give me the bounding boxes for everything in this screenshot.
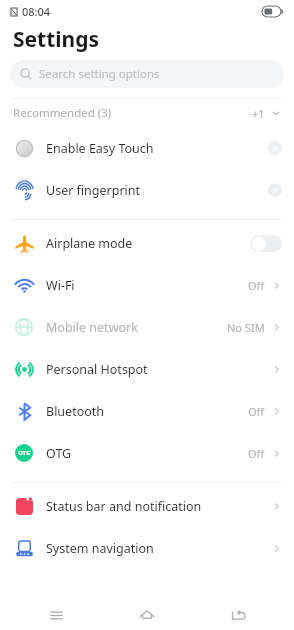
staticText: User fingerprint: [46, 182, 141, 199]
staticText: Airplane mode: [46, 235, 133, 252]
staticText: Status bar and notification: [46, 498, 202, 515]
staticText: Bluetooth: [46, 403, 105, 420]
staticText: Settings: [13, 25, 100, 54]
staticText: Enable Easy Touch: [46, 140, 154, 157]
staticText: Wi-Fi: [46, 277, 75, 294]
staticText: Off: [248, 278, 265, 293]
staticText: Off: [248, 446, 265, 461]
button[interactable]: Airplane mode: [0, 222, 294, 264]
staticText: Personal Hotspot: [46, 361, 148, 378]
button[interactable]: Recents: [21, 600, 91, 630]
staticText: Off: [248, 404, 265, 419]
staticText: Recommended (3): [13, 105, 112, 121]
button[interactable]: Home: [112, 600, 182, 630]
staticText: OTG: [46, 445, 72, 462]
button[interactable]: Search setting options: [10, 60, 284, 88]
staticText: 08:04: [22, 4, 51, 19]
button[interactable]: Wi-Fi: [0, 264, 294, 306]
button[interactable]: Back: [203, 600, 273, 630]
button[interactable]: Airplane mode toggle: [250, 235, 282, 252]
button[interactable]: System navigation: [0, 527, 294, 569]
staticText: Search setting options: [39, 66, 160, 82]
button[interactable]: Recommended (3): [0, 99, 294, 127]
button[interactable]: Mobile network: [0, 306, 294, 348]
staticText: Mobile network: [46, 319, 138, 336]
staticText: OTG: [18, 449, 31, 457]
button[interactable]: User fingerprint: [0, 169, 294, 211]
button[interactable]: Dismiss: [268, 141, 282, 155]
button[interactable]: Enable Easy Touch: [0, 127, 294, 169]
button[interactable]: Personal Hotspot: [0, 348, 294, 390]
button[interactable]: OTG: [0, 432, 294, 474]
button[interactable]: Bluetooth: [0, 390, 294, 432]
staticText: No SIM: [227, 320, 265, 335]
button[interactable]: Status bar and notification: [0, 485, 294, 527]
staticText: System navigation: [46, 540, 154, 557]
button[interactable]: Dismiss: [268, 183, 282, 197]
staticText: +1: [252, 106, 265, 121]
